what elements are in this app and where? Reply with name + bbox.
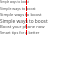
staticText: Simple ways to boost	[0, 6, 36, 11]
staticText: Simple ways to boost	[0, 12, 42, 18]
staticText: Simple ways to boost	[0, 0, 29, 4]
staticText: Simple ways to boost	[0, 18, 48, 25]
staticText: Smart tips for a better	[0, 30, 40, 35]
staticText: Boost your phone now	[0, 24, 45, 30]
